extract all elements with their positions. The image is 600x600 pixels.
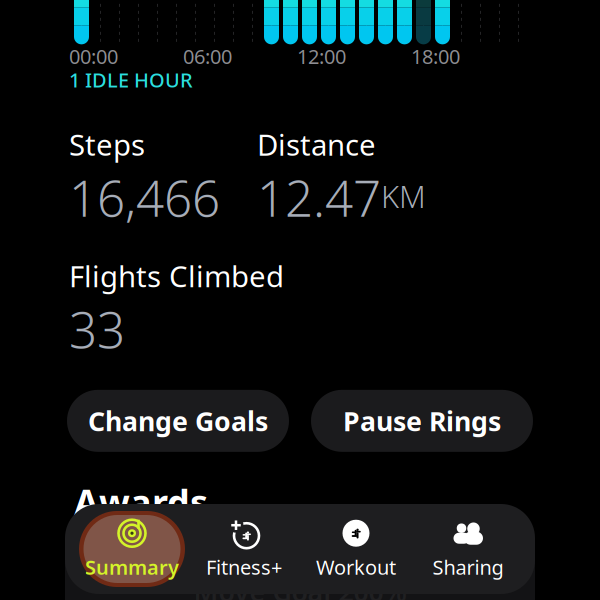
staticText: 12.47 bbox=[257, 165, 381, 230]
staticText: 18:00 bbox=[411, 43, 460, 70]
button[interactable]: Fitness+ bbox=[188, 509, 300, 589]
staticText: Fitness+ bbox=[206, 554, 282, 580]
staticText: Workout bbox=[316, 554, 396, 580]
button[interactable]: Summary bbox=[76, 509, 188, 589]
staticText: 12:00 bbox=[297, 43, 346, 70]
staticText: 06:00 bbox=[183, 43, 232, 70]
staticText: Move Goal 200% bbox=[193, 574, 406, 600]
staticText: 1 IDLE HOUR bbox=[69, 66, 193, 93]
staticText: Steps bbox=[69, 125, 145, 164]
staticText: 33 bbox=[69, 296, 125, 362]
staticText: Sharing bbox=[432, 554, 503, 580]
button[interactable]: Sharing bbox=[412, 509, 524, 589]
staticText: Awards bbox=[74, 478, 208, 526]
staticText: Flights Climbed bbox=[69, 256, 284, 295]
button[interactable]: Change Goals bbox=[67, 390, 289, 452]
staticText: Distance bbox=[257, 125, 376, 164]
button[interactable]: Workout bbox=[300, 509, 412, 589]
button[interactable]: Pause Rings bbox=[311, 390, 533, 452]
staticText: 16,466 bbox=[69, 165, 220, 230]
staticText: Change Goals bbox=[88, 403, 268, 438]
staticText: KM bbox=[381, 176, 426, 216]
staticText: Pause Rings bbox=[343, 403, 501, 438]
staticText: 00:00 bbox=[69, 43, 118, 70]
staticText: Summary bbox=[85, 554, 179, 580]
